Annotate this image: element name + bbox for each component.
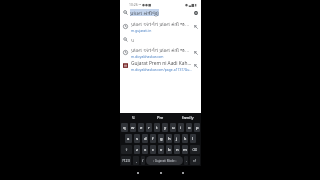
- button[interactable]: u: [170, 123, 176, 132]
- staticText: family: [182, 115, 194, 120]
- button[interactable]: l: [190, 134, 196, 143]
- staticText: ?123: [122, 158, 130, 163]
- button[interactable]: family: [174, 113, 201, 122]
- button[interactable]: w: [130, 123, 136, 132]
- button[interactable]: r: [146, 123, 152, 132]
- button[interactable]: v: [158, 145, 164, 154]
- button[interactable]: n: [174, 145, 180, 154]
- staticText: g: [160, 136, 163, 142]
- button[interactable]: ,: [133, 156, 139, 165]
- button[interactable]: Fill query: [194, 25, 198, 29]
- button[interactable]: p: [194, 123, 200, 132]
- staticText: v: [160, 147, 163, 153]
- staticText: પ્રધાન અંતર્ગત પ્રધાન મંત્રી જવાબ: [131, 47, 192, 54]
- button[interactable]: m: [182, 145, 188, 154]
- button[interactable]: y: [162, 123, 168, 132]
- staticText: .: [186, 158, 187, 163]
- staticText: ⇧: [125, 148, 129, 152]
- button[interactable]: o: [186, 123, 192, 132]
- button[interactable]: z: [134, 145, 140, 154]
- button[interactable]: e: [138, 123, 144, 132]
- button[interactable]: i: [178, 123, 184, 132]
- staticText: y: [164, 125, 167, 131]
- staticText: ,: [136, 158, 137, 163]
- button[interactable]: Clear: [194, 11, 198, 15]
- staticText: 10:26 •• ●●■: [129, 2, 152, 7]
- button[interactable]: c: [150, 145, 156, 154]
- button[interactable]: g: [158, 134, 164, 143]
- staticText: l: [192, 136, 194, 142]
- button[interactable]: ⏎: [190, 156, 200, 165]
- staticText: n: [176, 147, 179, 153]
- staticText: h: [168, 136, 171, 142]
- button[interactable]: j: [174, 134, 180, 143]
- button[interactable]: ?123: [121, 156, 131, 165]
- staticText: b: [168, 147, 171, 153]
- button[interactable]: a: [125, 134, 132, 143]
- staticText: s: [136, 136, 139, 142]
- staticText: a: [127, 136, 130, 142]
- staticText: w: [131, 125, 135, 131]
- staticText: ⏎: [193, 159, 197, 163]
- button[interactable]: ⇧: [121, 145, 132, 154]
- staticText: t: [156, 125, 158, 131]
- staticText: i: [180, 125, 182, 131]
- button[interactable]: Recents: [178, 168, 188, 178]
- staticText: પ: [132, 116, 135, 120]
- button[interactable]: Fill query: [194, 51, 198, 55]
- button[interactable]: પ: [120, 33, 201, 46]
- button[interactable]: ⌫: [190, 145, 200, 154]
- staticText: Pre: [157, 115, 164, 120]
- staticText: f: [152, 136, 154, 142]
- button[interactable]: Gujarat Prem ni Aadi Kahani Di Bat: [120, 59, 201, 72]
- button[interactable]: h: [166, 134, 172, 143]
- staticText: m.gujarati.in: [131, 28, 152, 33]
- button[interactable]: પ્રધાન અંતર્ગત પ્રધાન મંત્રી જવાબ: [120, 20, 201, 33]
- staticText: ● ▃▆ ▮: [185, 2, 197, 7]
- button[interactable]: s: [134, 134, 140, 143]
- button[interactable]: Pre: [147, 113, 174, 122]
- staticText: ‹ Gujarati Mode ›: [153, 159, 177, 163]
- staticText: c: [152, 147, 155, 153]
- button[interactable]: .: [184, 156, 188, 165]
- button[interactable]: x: [142, 145, 148, 154]
- button[interactable]: k: [182, 134, 188, 143]
- button[interactable]: પ: [120, 113, 147, 122]
- staticText: /: [142, 158, 144, 163]
- button[interactable]: Home: [156, 168, 166, 178]
- staticText: m.divyabhaskar.com: [131, 54, 164, 59]
- staticText: પ્રધાન મંત્રીજી: [130, 9, 159, 16]
- staticText: d: [144, 136, 147, 142]
- staticText: Gujarat Prem ni Aadi Kahani Di Bat: [131, 60, 192, 67]
- staticText: q: [123, 125, 126, 131]
- staticText: e: [140, 125, 143, 131]
- staticText: p: [196, 125, 199, 131]
- staticText: z: [136, 147, 138, 153]
- button[interactable]: t: [154, 123, 160, 132]
- button[interactable]: b: [166, 145, 172, 154]
- staticText: m: [183, 147, 187, 153]
- staticText: ⌫: [192, 148, 198, 152]
- button[interactable]: Back: [133, 168, 143, 178]
- other: Search: [123, 10, 128, 15]
- button[interactable]: પ્રધાન અંતર્ગત પ્રધાન મંત્રી જવાબ: [120, 46, 201, 59]
- staticText: r: [148, 125, 150, 131]
- staticText: o: [188, 125, 191, 131]
- staticText: પ: [131, 38, 134, 42]
- button[interactable]: /: [141, 156, 145, 165]
- button[interactable]: q: [121, 123, 128, 132]
- button[interactable]: Fill query: [194, 64, 198, 68]
- button[interactable]: f: [150, 134, 156, 143]
- button[interactable]: d: [142, 134, 148, 143]
- staticText: x: [144, 147, 147, 153]
- staticText: m.divyabhaskar.com/page-a1737/Gu...: [131, 67, 192, 72]
- staticText: પ્રધાન અંતર્ગત પ્રધાન મંત્રી જવાબ: [131, 21, 192, 28]
- button[interactable]: Space: [146, 156, 183, 165]
- staticText: u: [172, 125, 175, 131]
- staticText: k: [184, 136, 187, 142]
- staticText: j: [176, 136, 178, 142]
